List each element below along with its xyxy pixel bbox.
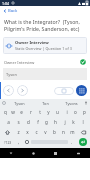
button[interactable]: z	[14, 127, 23, 137]
staticText: Owner Interview	[15, 40, 49, 45]
button[interactable]: Space	[31, 139, 68, 145]
button[interactable]: k	[69, 117, 78, 127]
staticText: z	[17, 129, 20, 135]
button[interactable]: h	[51, 117, 60, 127]
button[interactable]: Previous question	[3, 85, 14, 96]
button[interactable]: a	[3, 117, 13, 127]
staticText: What is the Integrator? (Tyson, Pilgrim'…	[4, 18, 86, 32]
button[interactable]: b	[50, 127, 59, 137]
button[interactable]: Attach	[54, 87, 74, 95]
button[interactable]: .	[68, 137, 76, 147]
button[interactable]: Tysons	[58, 101, 84, 106]
button[interactable]: Switch input method	[67, 148, 90, 158]
staticText: ?123	[4, 140, 12, 145]
button[interactable]: Back	[0, 6, 90, 15]
staticText: g	[45, 119, 48, 125]
staticText: n	[62, 129, 65, 135]
staticText: Tyson	[6, 72, 17, 77]
button[interactable]: Tyson	[6, 101, 32, 106]
button[interactable]: Home	[22, 148, 44, 158]
button[interactable]: g	[42, 117, 51, 127]
button[interactable]: Emoji	[23, 137, 31, 147]
button[interactable]: s	[13, 117, 23, 127]
staticText: Back	[8, 8, 18, 14]
button[interactable]: Settings	[2, 101, 6, 105]
button[interactable]: e	[17, 107, 26, 117]
staticText: 1:04	[2, 1, 9, 6]
staticText: q	[4, 109, 7, 115]
button[interactable]: x	[23, 127, 32, 137]
staticText: a	[7, 119, 10, 125]
button[interactable]: Owner Interview	[3, 37, 87, 54]
button[interactable]: Backspace	[77, 127, 89, 137]
staticText: Tyson	[14, 101, 25, 106]
button[interactable]: Recent apps	[44, 148, 67, 158]
button[interactable]: q	[1, 107, 9, 117]
staticText: p	[83, 109, 86, 115]
staticText: t	[39, 109, 41, 115]
button[interactable]: Next question	[17, 85, 28, 96]
staticText: Tysons	[65, 101, 78, 106]
button[interactable]: i	[62, 107, 71, 117]
staticText: s	[17, 119, 20, 125]
button[interactable]: c	[32, 127, 41, 137]
button[interactable]: j	[60, 117, 69, 127]
staticText: ,	[18, 139, 20, 145]
staticText: m	[70, 129, 75, 135]
button[interactable]: Keypad	[76, 85, 87, 96]
staticText: c	[35, 129, 38, 135]
button[interactable]: v	[41, 127, 50, 137]
staticText: f	[37, 119, 39, 125]
staticText: h	[54, 119, 57, 125]
button[interactable]: w	[9, 107, 17, 117]
button[interactable]: ?123	[1, 137, 15, 147]
staticText: .	[71, 139, 73, 145]
button[interactable]: Tyson	[3, 68, 87, 80]
button[interactable]: Voice input	[84, 101, 88, 105]
button[interactable]: r	[26, 107, 35, 117]
staticText: Owner Interview	[4, 60, 35, 65]
staticText: o	[74, 109, 77, 115]
button[interactable]: Shift	[1, 127, 14, 137]
button[interactable]: f	[33, 117, 42, 127]
staticText: i	[66, 109, 68, 115]
staticText: k	[72, 119, 75, 125]
button[interactable]: l	[78, 117, 87, 127]
staticText: x	[26, 129, 29, 135]
button[interactable]: m	[68, 127, 77, 137]
button[interactable]: u	[53, 107, 62, 117]
staticText: v	[44, 129, 47, 135]
staticText: y	[47, 109, 50, 115]
staticText: u	[56, 109, 59, 115]
button[interactable]: y	[44, 107, 53, 117]
staticText: r	[30, 109, 32, 115]
button[interactable]: Completed	[80, 59, 86, 65]
button[interactable]: p	[80, 107, 89, 117]
button[interactable]: d	[23, 117, 33, 127]
staticText: e	[20, 109, 23, 115]
button[interactable]: Enter	[79, 138, 87, 146]
staticText: j	[64, 119, 66, 125]
button[interactable]: n	[59, 127, 68, 137]
button[interactable]: o	[71, 107, 80, 117]
button[interactable]: Ton	[32, 101, 58, 106]
staticText: w	[11, 109, 15, 115]
button[interactable]: ,	[15, 137, 23, 147]
button[interactable]: Hide keyboard	[0, 148, 22, 158]
staticText: Static Overview | Question 1 of 3	[15, 46, 72, 51]
button[interactable]: t	[35, 107, 44, 117]
staticText: l	[82, 119, 84, 125]
staticText: Ton	[42, 101, 49, 106]
staticText: d	[27, 119, 30, 125]
staticText: b	[53, 129, 56, 135]
